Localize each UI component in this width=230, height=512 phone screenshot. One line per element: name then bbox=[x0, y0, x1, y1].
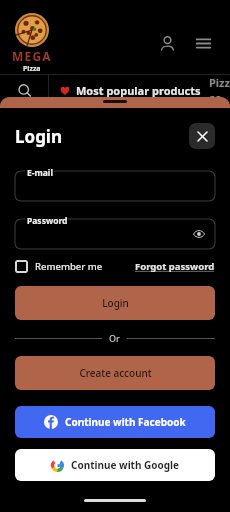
staticText: Continue with Facebook bbox=[65, 415, 186, 429]
button[interactable]: Create account bbox=[15, 356, 215, 390]
button[interactable]: Account bbox=[154, 30, 180, 56]
button[interactable]: E-mail bbox=[15, 165, 215, 201]
button[interactable]: Close bbox=[189, 123, 215, 149]
button[interactable]: Menu bbox=[190, 30, 216, 56]
staticText: Create account bbox=[79, 366, 152, 380]
staticText: Password bbox=[27, 215, 68, 227]
staticText: Pizza bbox=[23, 64, 41, 74]
staticText: E-mail bbox=[27, 167, 53, 179]
staticText: Login bbox=[15, 125, 63, 148]
button[interactable]: Continue with Google bbox=[15, 449, 215, 481]
button[interactable]: Forgot password bbox=[135, 260, 215, 273]
staticText: Continue with Google bbox=[71, 458, 180, 472]
staticText: Forgot password bbox=[135, 260, 215, 273]
staticText: Remember me bbox=[35, 260, 103, 273]
button[interactable]: Continue with Facebook bbox=[15, 406, 215, 438]
button[interactable]: Show password bbox=[192, 227, 206, 241]
staticText: Or bbox=[109, 332, 120, 344]
button[interactable]: Login bbox=[15, 286, 215, 320]
staticText: Pizzas bbox=[209, 75, 230, 105]
staticText: MEGA bbox=[12, 48, 52, 64]
staticText: Login bbox=[102, 296, 129, 310]
button[interactable]: Remember me bbox=[15, 260, 103, 273]
button[interactable]: Password bbox=[15, 213, 215, 249]
staticText: Most popular products bbox=[76, 83, 201, 98]
